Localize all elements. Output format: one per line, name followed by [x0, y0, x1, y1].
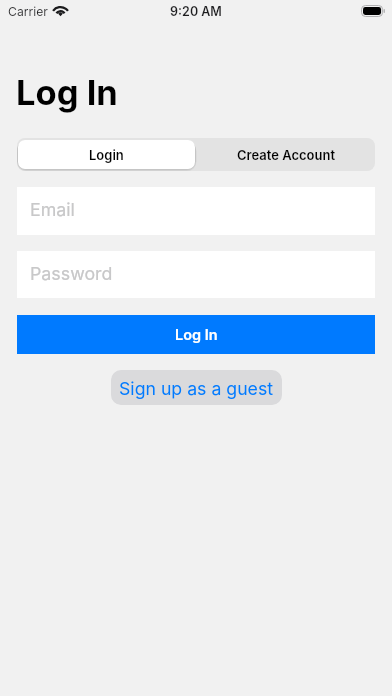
button[interactable]: Email [17, 187, 375, 235]
staticText: Log In [175, 326, 218, 344]
staticText: Log In [16, 72, 118, 114]
staticText: Login [89, 147, 124, 163]
other: Wi-Fi signal [52, 4, 69, 16]
other: Battery full [361, 5, 385, 17]
button[interactable]: Sign up as a guest [111, 370, 282, 405]
staticText: Create Account [237, 147, 335, 163]
staticText: Sign up as a guest [119, 378, 274, 399]
staticText: Carrier [8, 4, 48, 19]
staticText: 9:20 AM [170, 4, 222, 19]
button[interactable]: Log In [17, 315, 375, 354]
button[interactable]: Login [18, 140, 195, 169]
staticText: Password [30, 263, 113, 285]
button[interactable]: Password [17, 251, 375, 298]
staticText: Email [30, 199, 75, 221]
button[interactable]: Create Account [196, 138, 375, 171]
